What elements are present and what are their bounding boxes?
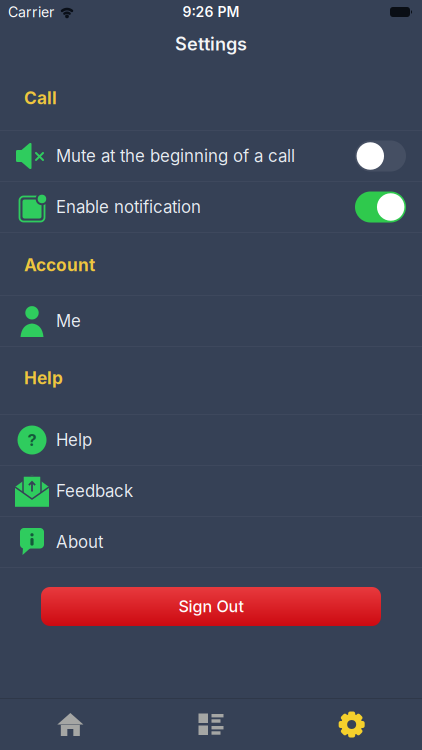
staticText: 9:26 PM (182, 3, 239, 20)
staticText: Call (24, 88, 57, 108)
staticText: Help (56, 430, 92, 450)
button[interactable]: Enable notification (355, 191, 406, 222)
staticText: Mute at the beginning of a call (56, 146, 295, 166)
staticText: Account (24, 255, 95, 275)
staticText: About (56, 532, 103, 552)
staticText: Me (56, 311, 81, 331)
staticText: ? (27, 430, 36, 450)
button[interactable]: History (141, 699, 281, 750)
button[interactable]: Sign Out (0, 587, 422, 626)
staticText: Sign Out (178, 597, 243, 616)
staticText: Carrier (8, 3, 54, 20)
button[interactable]: Home (0, 699, 141, 750)
button[interactable]: Feedback (0, 466, 422, 516)
staticText: Help (24, 368, 63, 388)
staticText: Enable notification (56, 197, 201, 217)
staticText: Feedback (56, 481, 133, 501)
button[interactable]: Mute at the beginning of a call (355, 140, 406, 171)
button[interactable]: Settings (281, 699, 422, 750)
staticText: Settings (175, 33, 247, 55)
button[interactable]: Me (0, 296, 422, 346)
button[interactable]: ? (0, 415, 422, 465)
button[interactable]: About (0, 517, 422, 567)
